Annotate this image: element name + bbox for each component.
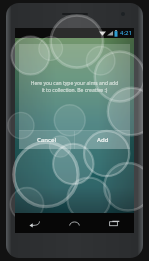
- button[interactable]: Add: [75, 131, 130, 149]
- staticText: 4:21: [120, 29, 132, 37]
- staticText: Cancel: [37, 136, 57, 144]
- staticText: Add: [97, 136, 109, 144]
- button[interactable]: Home: [54, 213, 94, 233]
- button[interactable]: Recent apps: [94, 213, 134, 233]
- button[interactable]: Cancel: [19, 131, 74, 149]
- button[interactable]: Back: [15, 213, 54, 233]
- staticText: Here you can type your aims and add it t…: [29, 80, 120, 94]
